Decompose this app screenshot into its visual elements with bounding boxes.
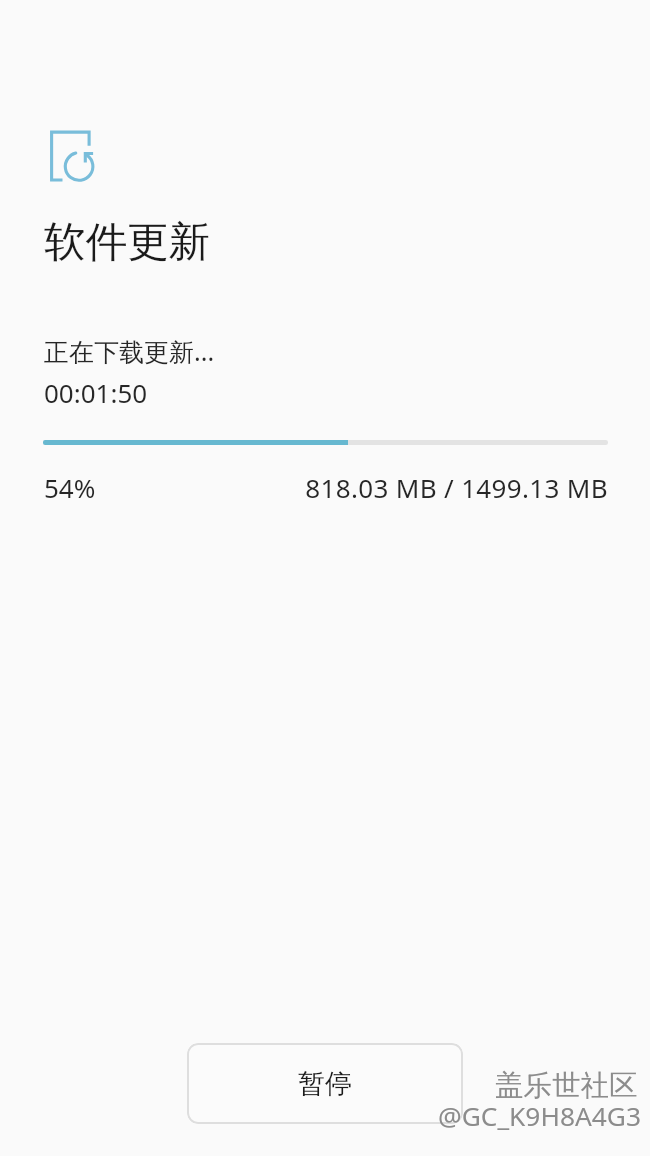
other: Software update bbox=[46, 127, 98, 185]
staticText: 暂停 bbox=[298, 1067, 352, 1101]
staticText: 818.03 MB / 1499.13 MB bbox=[290, 470, 608, 505]
staticText: @GC_K9H8A4G3 bbox=[438, 1098, 641, 1134]
staticText: 正在下载更新... bbox=[44, 334, 215, 368]
staticText: 软件更新 bbox=[44, 216, 210, 268]
staticText: 00:01:50 bbox=[44, 375, 148, 410]
staticText: 盖乐世社区 bbox=[495, 1068, 638, 1104]
staticText: 54% bbox=[44, 470, 96, 505]
button[interactable]: 暂停 bbox=[187, 1043, 463, 1124]
